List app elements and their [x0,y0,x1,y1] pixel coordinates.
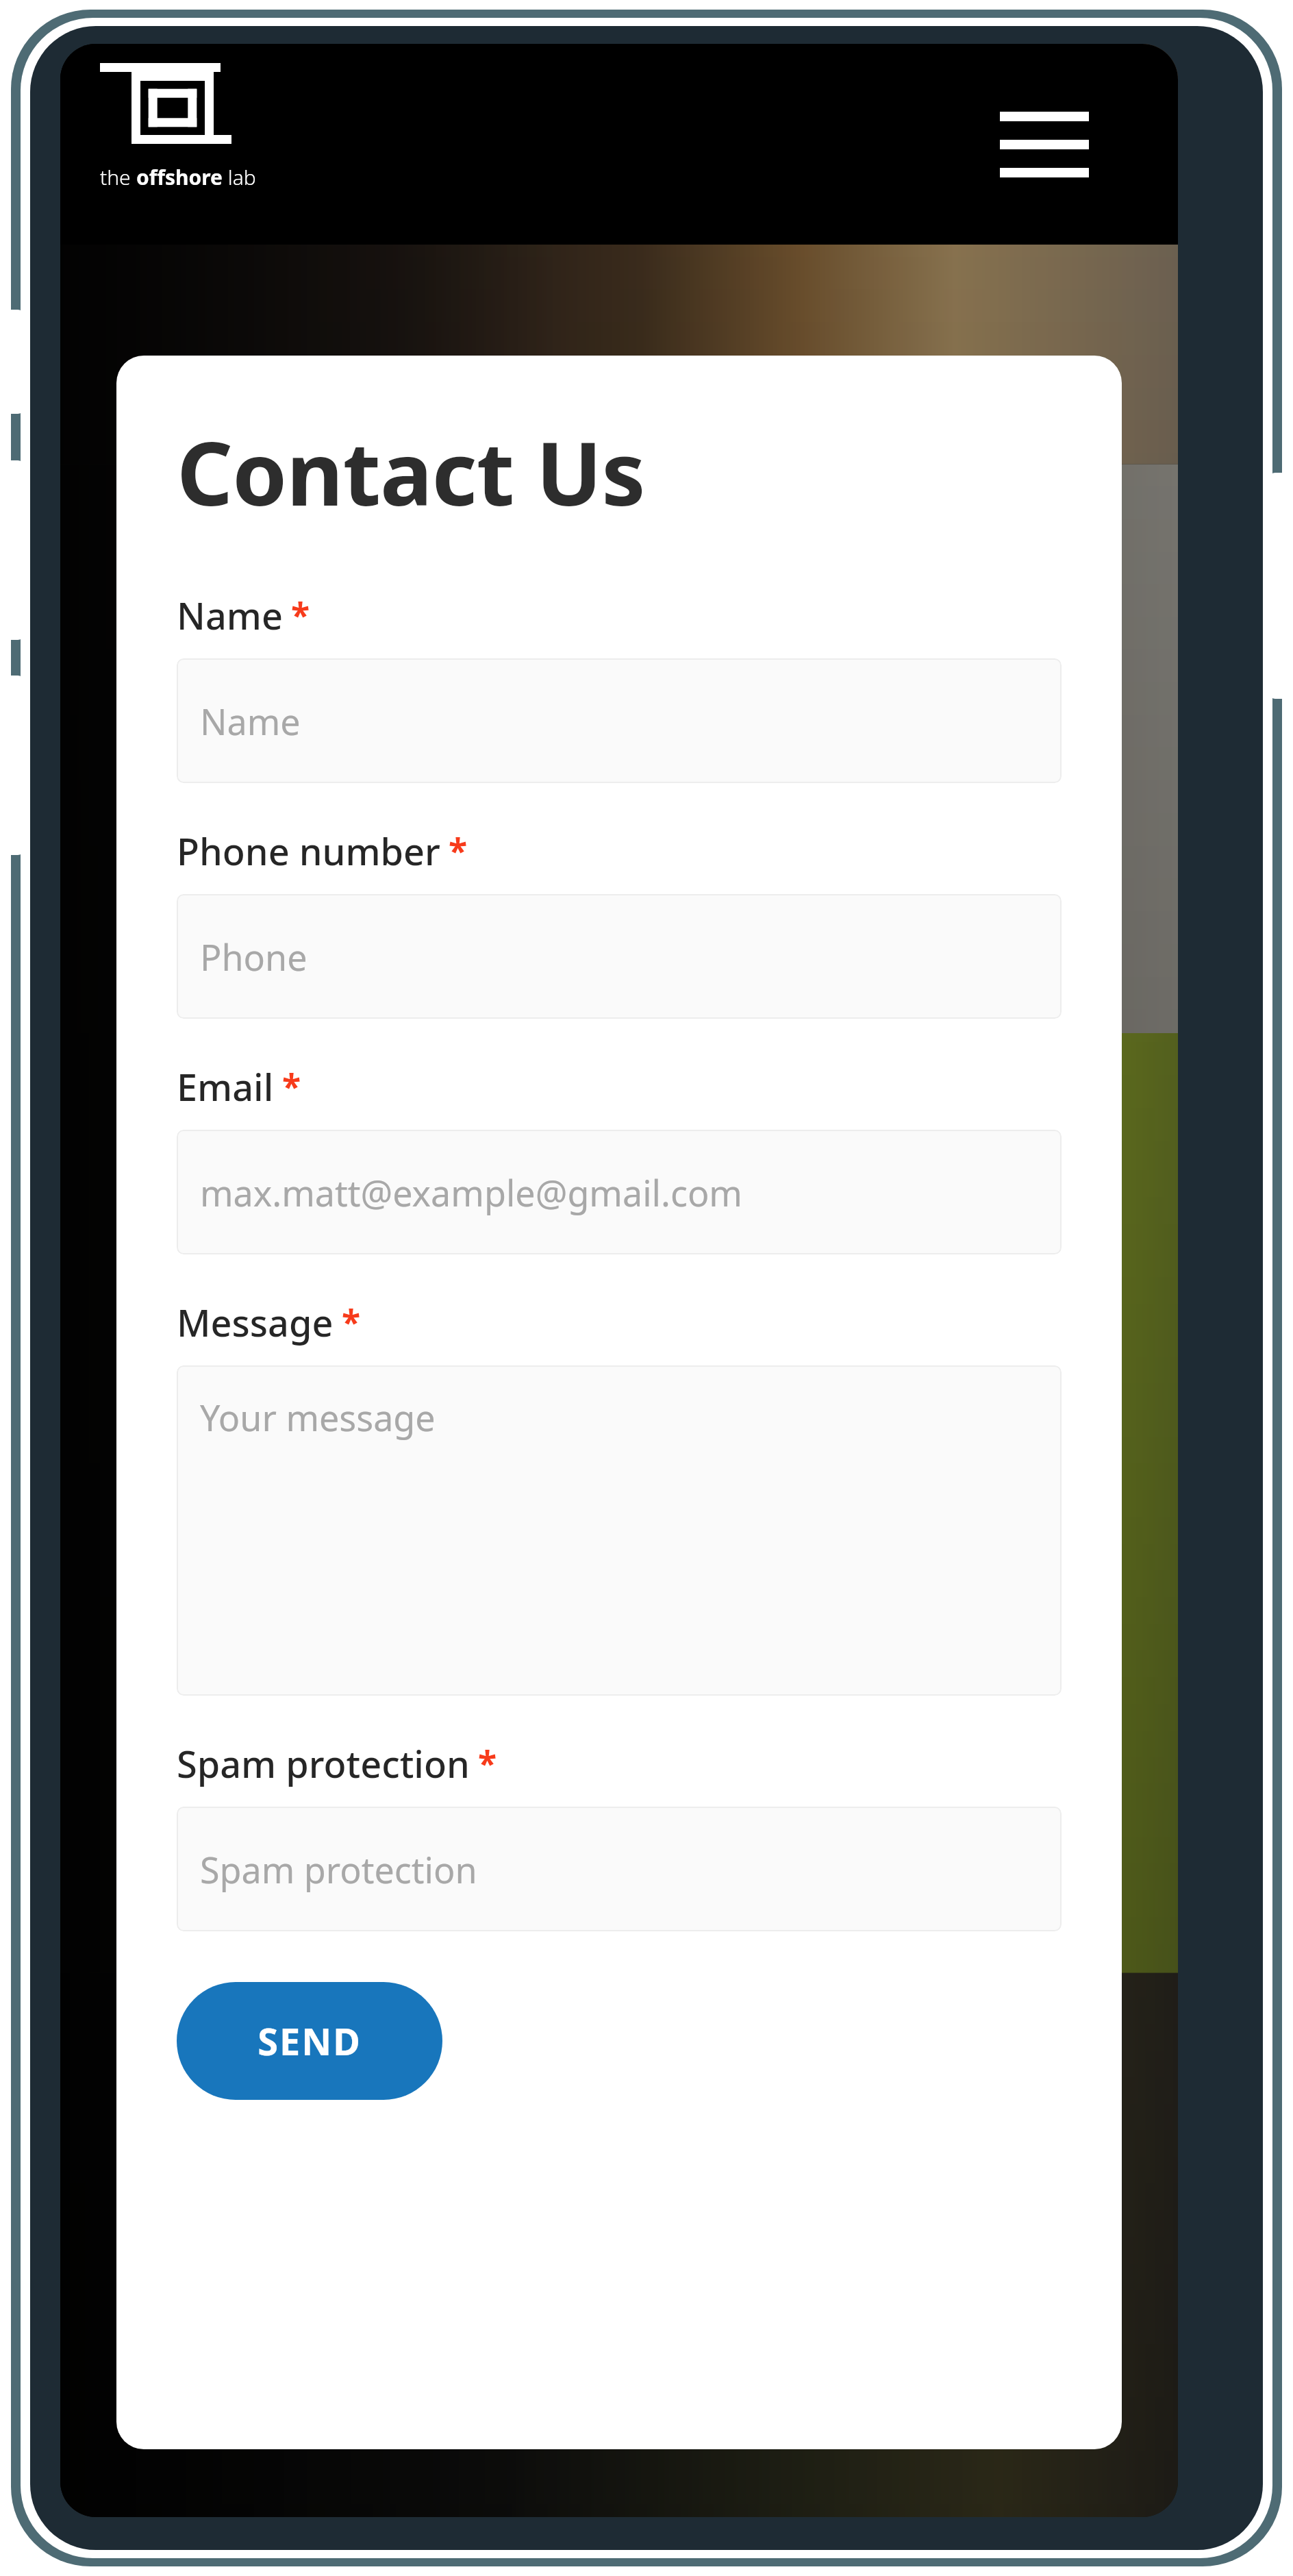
staticText: Phone [200,932,307,981]
staticText: Message [177,1297,334,1348]
staticText: Name [200,697,301,745]
button[interactable]: Your message [177,1365,1062,1696]
staticText: Phone number [177,826,440,876]
staticText: the [100,163,136,191]
staticText: * [291,591,310,638]
button[interactable]: Name [177,658,1062,783]
button[interactable]: Phone [177,894,1062,1019]
button[interactable]: Open navigation menu [986,86,1103,203]
staticText: Email [177,1061,274,1112]
button[interactable]: SEND [177,1982,442,2100]
staticText: offshore [136,163,223,191]
staticText: Spam protection [200,1845,477,1894]
staticText: * [342,1298,361,1345]
staticText: * [478,1739,497,1786]
staticText: SEND [258,2016,362,2066]
button[interactable]: max.matt@example@gmail.com [177,1130,1062,1254]
staticText: Name [177,590,283,641]
staticText: * [449,827,468,874]
staticText: Your message [200,1393,436,1441]
button[interactable]: Spam protection [177,1807,1062,1931]
staticText: max.matt@example@gmail.com [200,1168,742,1217]
button[interactable]: the offshore lab home [97,60,259,194]
staticText: Spam protection [177,1738,470,1789]
staticText: Contact Us [177,412,645,531]
staticText: * [282,1063,301,1109]
staticText: lab [223,163,256,191]
